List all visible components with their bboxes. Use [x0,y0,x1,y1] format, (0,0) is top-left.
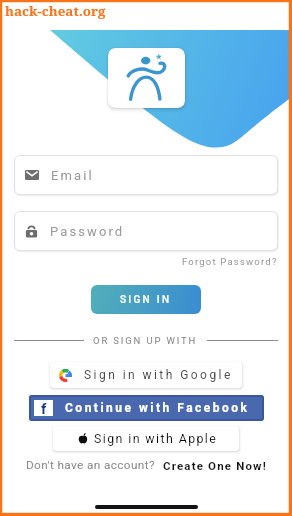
staticText: Sign in with Google [84,368,233,382]
staticText: Create One Now! [163,459,267,472]
button[interactable]: Sign in with Google [50,362,242,388]
staticText: OR SIGN UP WITH [93,335,198,346]
button[interactable]: Sign in with Apple [53,426,239,451]
staticText: Email [51,168,94,183]
staticText: Sign in with Apple [94,431,218,446]
staticText: Password [50,224,125,239]
staticText: SIGN IN [120,294,172,306]
button[interactable]: Email [14,155,278,195]
staticText: f [41,400,47,416]
button[interactable]: SIGN IN [91,285,201,314]
staticText: Forgot Password? [182,256,278,267]
button[interactable]: Create One Now! [163,459,267,472]
staticText: Continue with Facebook [65,401,250,415]
staticText: Don't have an account? [26,458,155,472]
button[interactable]: Forgot Password? [180,254,280,269]
button[interactable]: Password [14,211,278,251]
staticText: hack-cheat.org [5,2,106,20]
button[interactable]: f [29,395,264,421]
